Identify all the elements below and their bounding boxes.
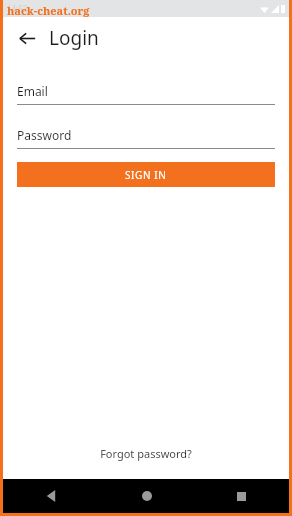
staticText: Forgot password? (100, 446, 192, 461)
staticText: Password (17, 127, 72, 143)
staticText: 14:52 (7, 3, 28, 14)
button[interactable]: Back (3, 479, 99, 513)
button[interactable]: Email (17, 83, 275, 105)
staticText: SIGN IN (125, 168, 167, 182)
staticText: Login (49, 25, 99, 51)
staticText: hack-cheat.org (7, 3, 90, 18)
button[interactable]: Recent apps (194, 479, 289, 513)
button[interactable]: Home (99, 479, 194, 513)
staticText: Email (17, 83, 48, 99)
button[interactable]: Forgot password? (3, 446, 289, 461)
button[interactable]: SIGN IN (17, 162, 275, 187)
button[interactable]: Password (17, 127, 275, 149)
button[interactable]: Back (13, 24, 41, 52)
